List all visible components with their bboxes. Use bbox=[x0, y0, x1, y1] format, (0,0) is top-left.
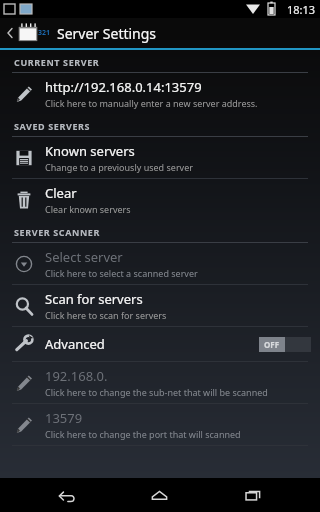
staticText: Advanced bbox=[45, 335, 105, 353]
staticText: OFF bbox=[264, 339, 280, 350]
button[interactable]: Advanced toggle, off bbox=[259, 337, 311, 352]
button[interactable]: Home bbox=[132, 478, 186, 512]
staticText: SERVER SCANNER bbox=[14, 226, 100, 238]
staticText: Clear known servers bbox=[45, 203, 131, 215]
staticText: Change to a previously used server bbox=[45, 161, 193, 173]
button[interactable]: 192.168.0. bbox=[0, 362, 320, 403]
staticText: Click here to change the sub-net that wi… bbox=[45, 386, 268, 398]
button[interactable]: Advanced bbox=[0, 327, 320, 361]
staticText: Click here to select a scanned server bbox=[45, 267, 198, 279]
staticText: 192.168.0. bbox=[45, 367, 108, 385]
staticText: Click here to change the port that will … bbox=[45, 428, 241, 440]
staticText: Known servers bbox=[45, 142, 135, 160]
button[interactable]: Back bbox=[39, 478, 93, 512]
button[interactable]: Recent apps bbox=[226, 478, 280, 512]
staticText: Click here to manually enter a new serve… bbox=[45, 97, 258, 109]
staticText: http://192.168.0.14:13579 bbox=[45, 78, 202, 96]
button[interactable]: Select server bbox=[0, 243, 320, 284]
button[interactable]: Scan for servers bbox=[0, 285, 320, 326]
staticText: Select server bbox=[45, 248, 123, 266]
button[interactable]: Known servers bbox=[0, 137, 320, 178]
staticText: Server Settings bbox=[57, 24, 157, 43]
button[interactable]: 13579 bbox=[0, 404, 320, 445]
other: Navigate up bbox=[6, 26, 14, 40]
staticText: Clear bbox=[45, 184, 77, 202]
staticText: Scan for servers bbox=[45, 290, 143, 308]
button[interactable]: Clear bbox=[0, 179, 320, 220]
staticText: 321 bbox=[38, 28, 51, 38]
staticText: 18:13 bbox=[287, 2, 316, 17]
staticText: 13579 bbox=[45, 409, 83, 427]
button[interactable]: Navigate up bbox=[0, 18, 320, 48]
button[interactable]: http://192.168.0.14:13579 bbox=[0, 73, 320, 114]
staticText: CURRENT SERVER bbox=[14, 56, 100, 68]
staticText: Click here to scan for servers bbox=[45, 309, 167, 321]
staticText: SAVED SERVERS bbox=[14, 120, 91, 132]
